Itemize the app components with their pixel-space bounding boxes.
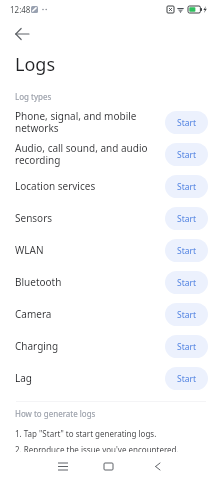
button[interactable]: Charging — [0, 330, 222, 362]
button[interactable]: Home — [96, 454, 120, 478]
button[interactable]: Bluetooth — [0, 266, 222, 298]
staticText: Start — [177, 277, 197, 289]
button[interactable]: Location services — [0, 170, 222, 202]
staticText: Start — [177, 309, 197, 321]
staticText: How to generate logs — [15, 408, 96, 419]
staticText: Lag — [15, 371, 150, 385]
button[interactable]: Start — [165, 239, 208, 262]
staticText: Start — [177, 149, 197, 161]
button[interactable]: Lag — [0, 362, 222, 394]
staticText: Start — [177, 181, 197, 193]
staticText: 12:48 — [10, 4, 31, 15]
button[interactable]: Start — [165, 335, 208, 358]
button[interactable]: Start — [165, 367, 208, 390]
staticText: WLAN — [15, 243, 150, 257]
staticText: Log types — [15, 91, 52, 102]
button[interactable]: Start — [165, 111, 208, 134]
button[interactable]: Start — [165, 271, 208, 294]
staticText: Audio, call sound, and audio recording — [15, 141, 150, 167]
button[interactable]: Start — [165, 207, 208, 230]
staticText: Charging — [15, 339, 150, 353]
staticText: Location services — [15, 179, 150, 193]
button[interactable]: Start — [165, 303, 208, 326]
staticText: Camera — [15, 307, 150, 321]
staticText: Start — [177, 117, 197, 129]
button[interactable]: Recent apps — [51, 454, 75, 478]
button[interactable]: Camera — [0, 298, 222, 330]
staticText: Phone, signal, and mobile networks — [15, 109, 150, 135]
button[interactable]: Back — [9, 21, 35, 47]
staticText: Logs — [15, 52, 56, 77]
staticText: Start — [177, 341, 197, 353]
button[interactable]: WLAN — [0, 234, 222, 266]
button[interactable]: Start — [165, 175, 208, 198]
staticText: Start — [177, 245, 197, 257]
button[interactable]: Phone, signal, and mobile networks — [0, 106, 222, 138]
button[interactable]: Sensors — [0, 202, 222, 234]
button[interactable]: Start — [165, 143, 208, 166]
button[interactable]: Audio, call sound, and audio recording — [0, 138, 222, 170]
staticText: Bluetooth — [15, 275, 150, 289]
staticText: 2. Reproduce the issue you've encountere… — [15, 444, 179, 455]
staticText: Start — [177, 213, 197, 225]
button[interactable]: Back — [145, 454, 169, 478]
staticText: Start — [177, 373, 197, 385]
staticText: Sensors — [15, 211, 150, 225]
staticText: 1. Tap "Start" to start generating logs. — [15, 428, 157, 439]
